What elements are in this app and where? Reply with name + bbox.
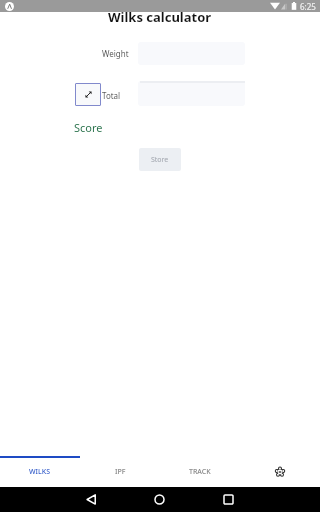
staticText: Wilks calculator <box>108 8 212 22</box>
button[interactable]: WILKS <box>0 456 80 487</box>
button[interactable]: IPF <box>80 456 160 487</box>
button[interactable]: Expand <box>75 83 101 106</box>
button[interactable]: Home <box>146 487 172 512</box>
staticText: Weight <box>102 48 129 59</box>
staticText: Score <box>74 120 103 135</box>
staticText: IPF <box>115 467 126 477</box>
button[interactable]: Recents <box>215 487 241 512</box>
button[interactable]: Settings <box>240 456 320 487</box>
button[interactable]: Total input <box>138 81 245 106</box>
button[interactable]: Back <box>78 487 104 512</box>
staticText: TRACK <box>189 467 211 477</box>
button[interactable]: Store <box>139 148 181 171</box>
staticText: Total <box>102 90 121 101</box>
staticText: Store <box>151 155 169 165</box>
staticText: WILKS <box>29 467 51 477</box>
staticText: 6:25 <box>300 1 316 12</box>
button[interactable]: TRACK <box>160 456 240 487</box>
